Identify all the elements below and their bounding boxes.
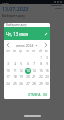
staticText: вт (13, 49, 16, 53)
staticText: пт (32, 49, 35, 53)
button[interactable]: 21 (30, 73, 37, 80)
staticText: 30 (45, 82, 49, 86)
button[interactable]: 8 (37, 60, 44, 67)
button[interactable]: 25 (11, 80, 18, 87)
button[interactable]: ОК (42, 92, 49, 98)
staticText: сб (39, 49, 42, 53)
staticText: 8 (40, 62, 42, 66)
staticText: 17 (6, 75, 10, 79)
staticText: 12:45 (2, 1, 9, 4)
button[interactable]: 1 (37, 54, 44, 61)
staticText: пн (6, 49, 10, 53)
staticText: 13.07.2023 (2, 5, 29, 12)
button[interactable]: 2 (43, 54, 50, 61)
staticText: ОК (43, 93, 48, 97)
button[interactable]: 14 (30, 67, 37, 74)
staticText: 9 (46, 62, 48, 66)
staticText: Выберите дату (2, 14, 25, 18)
staticText: 27 (26, 82, 30, 86)
staticText: 4 (14, 62, 16, 66)
button[interactable]: 12 (17, 67, 24, 74)
staticText: 6 (27, 62, 29, 66)
button[interactable]: 6 (24, 60, 31, 67)
button[interactable]: 11 (11, 67, 18, 74)
button[interactable]: 4 (11, 60, 18, 67)
button[interactable]: 30 (43, 80, 50, 87)
button[interactable]: 18 (11, 73, 18, 80)
button[interactable]: 13 (24, 67, 31, 74)
button[interactable]: Edit date (43, 31, 49, 37)
button[interactable]: 26 (17, 80, 24, 87)
button[interactable]: 29 (37, 80, 44, 87)
button[interactable]: 3 (4, 60, 11, 67)
button[interactable]: Next month (43, 42, 49, 48)
button[interactable]: 28 (30, 80, 37, 87)
button[interactable]: 7 (30, 60, 37, 67)
staticText: 1 (40, 56, 42, 60)
button[interactable]: 27 (24, 80, 31, 87)
staticText: 29 (39, 82, 43, 86)
staticText: Чт, 13 июн (6, 31, 29, 37)
staticText: 15 (39, 69, 43, 73)
button[interactable]: 15 (37, 67, 44, 74)
button[interactable]: июнь 2024 (16, 43, 38, 48)
staticText: 13 (26, 69, 30, 73)
button[interactable]: 20 (24, 73, 31, 80)
button[interactable]: 16 (43, 67, 50, 74)
staticText: 3 (7, 62, 9, 66)
staticText: 11 (13, 69, 17, 73)
staticText: Выберите дату (6, 23, 27, 27)
staticText: 25 (13, 82, 17, 86)
button[interactable]: Previous month (5, 42, 11, 48)
button[interactable]: 24 (4, 80, 11, 87)
staticText: 10 (6, 69, 10, 73)
staticText: 21 (32, 75, 36, 79)
staticText: 20 (26, 75, 30, 79)
button[interactable]: ОТМЕНА (27, 92, 42, 98)
staticText: 18 (13, 75, 17, 79)
button[interactable]: 23 (43, 73, 50, 80)
staticText: 2 (46, 56, 48, 60)
staticText: 24 (6, 82, 10, 86)
staticText: июнь 2024 (16, 43, 34, 48)
button[interactable]: 17 (4, 73, 11, 80)
staticText: 23 (45, 75, 49, 79)
staticText: 26 (19, 82, 23, 86)
button[interactable]: 19 (17, 73, 24, 80)
staticText: 28 (32, 82, 36, 86)
button[interactable]: 10 (4, 67, 11, 74)
staticText: 7 (33, 62, 35, 66)
staticText: вс (45, 49, 48, 53)
button[interactable]: 22 (37, 73, 44, 80)
staticText: ОТМЕНА (28, 93, 41, 97)
staticText: 16 (45, 69, 49, 73)
staticText: 5 (20, 62, 22, 66)
staticText: 19 (19, 75, 23, 79)
staticText: 14 (32, 69, 36, 73)
button[interactable]: 9 (43, 60, 50, 67)
staticText: 12 (19, 69, 23, 73)
staticText: ср (19, 49, 22, 53)
staticText: 22 (39, 75, 43, 79)
button[interactable]: 5 (17, 60, 24, 67)
staticText: чт (26, 49, 29, 53)
